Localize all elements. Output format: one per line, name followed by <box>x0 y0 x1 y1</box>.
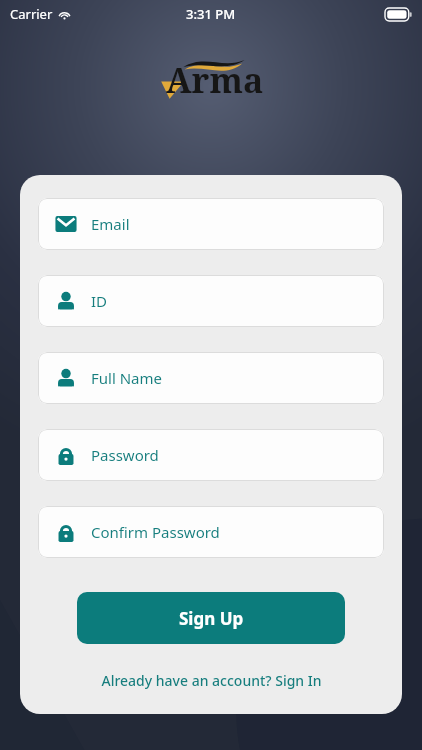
staticText: Full Name <box>91 368 162 388</box>
button[interactable]: Sign Up <box>77 592 345 644</box>
button[interactable]: Full Name <box>38 352 384 404</box>
staticText: Already have an account? Sign In <box>101 671 322 690</box>
staticText: Carrier <box>10 5 53 23</box>
staticText: Arma <box>166 57 264 103</box>
staticText: ID <box>91 291 108 311</box>
button[interactable]: Already have an account? Sign In <box>38 671 384 690</box>
staticText: Email <box>91 214 130 234</box>
button[interactable]: Email <box>38 198 384 250</box>
staticText: Sign Up <box>179 607 244 630</box>
button[interactable]: ID <box>38 275 384 327</box>
button[interactable]: Password <box>38 429 384 481</box>
staticText: Password <box>91 445 159 465</box>
staticText: 3:31 PM <box>186 5 236 23</box>
button[interactable]: Confirm Password <box>38 506 384 558</box>
staticText: Confirm Password <box>91 522 220 542</box>
